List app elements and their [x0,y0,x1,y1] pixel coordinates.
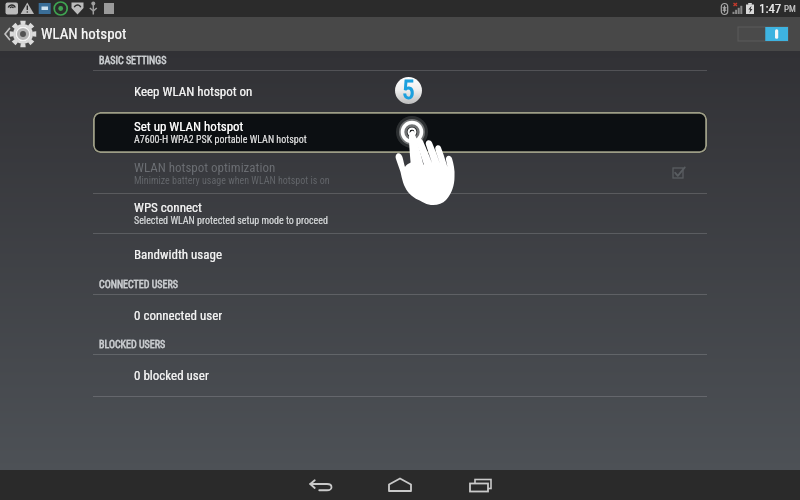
staticText: 0 blocked user [134,368,209,383]
button[interactable]: Keep WLAN hotspot on [93,71,707,112]
staticText: A7600-H WPA2 PSK portable WLAN hotspot [134,134,307,146]
button[interactable]: 0 blocked user [93,355,707,397]
staticText: 0 connected user [134,308,223,323]
button[interactable]: WPS connect [93,194,707,234]
button[interactable]: Recent apps [458,470,506,500]
button[interactable]: Bandwidth usage [93,234,707,275]
button[interactable]: Set up WLAN hotspot [93,112,707,153]
staticText: Minimize battery usage when WLAN hotspot… [134,175,330,187]
button[interactable]: Navigate up [0,17,38,51]
button[interactable]: Home [376,470,424,500]
staticText: Keep WLAN hotspot on [134,84,253,99]
button[interactable]: WLAN hotspot switch [738,27,788,41]
staticText: 1:47 [759,1,782,16]
staticText: WPS connect [134,200,202,215]
staticText: PM [784,4,796,15]
button[interactable]: Back [296,470,344,500]
staticText: WLAN hotspot [41,25,127,43]
staticText: 5 [402,77,415,103]
button[interactable]: 0 connected user [93,295,707,336]
button[interactable]: WLAN hotspot optimization [93,153,707,194]
staticText: Selected WLAN protected setup mode to pr… [134,215,328,227]
staticText: CONNECTED USERS [99,279,179,291]
staticText: BLOCKED USERS [99,339,166,351]
staticText: WLAN hotspot optimization [134,160,276,175]
staticText: Bandwidth usage [134,247,223,262]
staticText: Set up WLAN hotspot [134,119,244,134]
staticText: BASIC SETTINGS [99,55,167,67]
